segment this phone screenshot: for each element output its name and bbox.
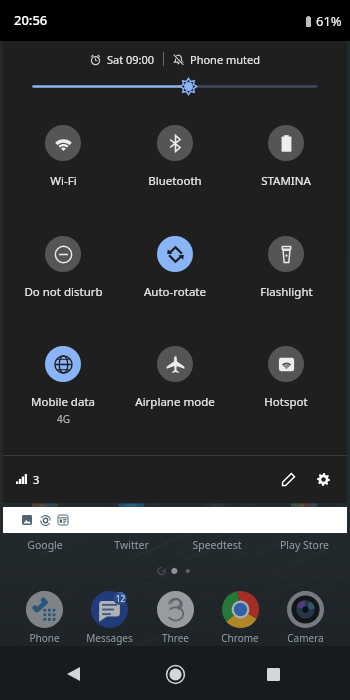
- staticText: Three: [162, 631, 189, 645]
- staticText: STAMINA: [261, 173, 311, 189]
- button[interactable]: Home: [158, 657, 192, 691]
- staticText: 3: [33, 472, 40, 487]
- button[interactable]: Three: [143, 591, 207, 645]
- button[interactable]: Camera: [273, 591, 337, 645]
- staticText: 20:56: [14, 11, 48, 29]
- staticText: Wi-Fi: [50, 173, 77, 189]
- staticText: Google: [27, 538, 63, 552]
- staticText: Mobile data: [31, 394, 95, 410]
- staticText: Camera: [287, 631, 324, 645]
- staticText: Auto-rotate: [144, 284, 206, 300]
- button[interactable]: Bluetooth: [121, 125, 229, 189]
- staticText: Chrome: [221, 631, 259, 645]
- button[interactable]: Back: [56, 657, 90, 691]
- staticText: Speedtest: [192, 538, 242, 552]
- button[interactable]: Wi-Fi: [9, 125, 117, 189]
- staticText: Do not disturb: [24, 284, 103, 300]
- button[interactable]: Auto-rotate: [121, 236, 229, 300]
- button[interactable]: 12: [77, 591, 141, 645]
- staticText: Messages: [86, 631, 133, 645]
- staticText: Play Store: [280, 538, 329, 552]
- staticText: Flashlight: [260, 284, 313, 300]
- button[interactable]: Hotspot: [232, 346, 340, 410]
- button[interactable]: Insert sticker: [40, 515, 51, 526]
- staticText: Hotspot: [264, 394, 308, 410]
- button[interactable]: Do not disturb: [9, 236, 117, 300]
- button[interactable]: Recents: [256, 657, 290, 691]
- staticText: Twitter: [114, 538, 149, 552]
- staticText: Phone muted: [190, 52, 260, 67]
- staticText: Phone: [29, 631, 60, 645]
- button[interactable]: Airplane mode: [121, 346, 229, 410]
- staticText: 61%: [316, 12, 342, 30]
- button[interactable]: Phone: [12, 591, 76, 645]
- button[interactable]: Mobile data: [9, 346, 117, 426]
- button[interactable]: Insert image: [22, 515, 32, 525]
- staticText: Sat 09:00: [107, 52, 155, 67]
- button[interactable]: Flashlight: [232, 236, 340, 300]
- button[interactable]: Settings: [308, 465, 338, 493]
- staticText: 4G: [57, 412, 70, 426]
- staticText: Bluetooth: [148, 173, 202, 189]
- staticText: Airplane mode: [135, 394, 215, 410]
- button[interactable]: Clipboard: [58, 515, 68, 525]
- button[interactable]: Edit tiles: [273, 465, 303, 493]
- staticText: 12: [116, 593, 126, 604]
- button[interactable]: STAMINA: [232, 125, 340, 189]
- button[interactable]: Chrome: [208, 591, 272, 645]
